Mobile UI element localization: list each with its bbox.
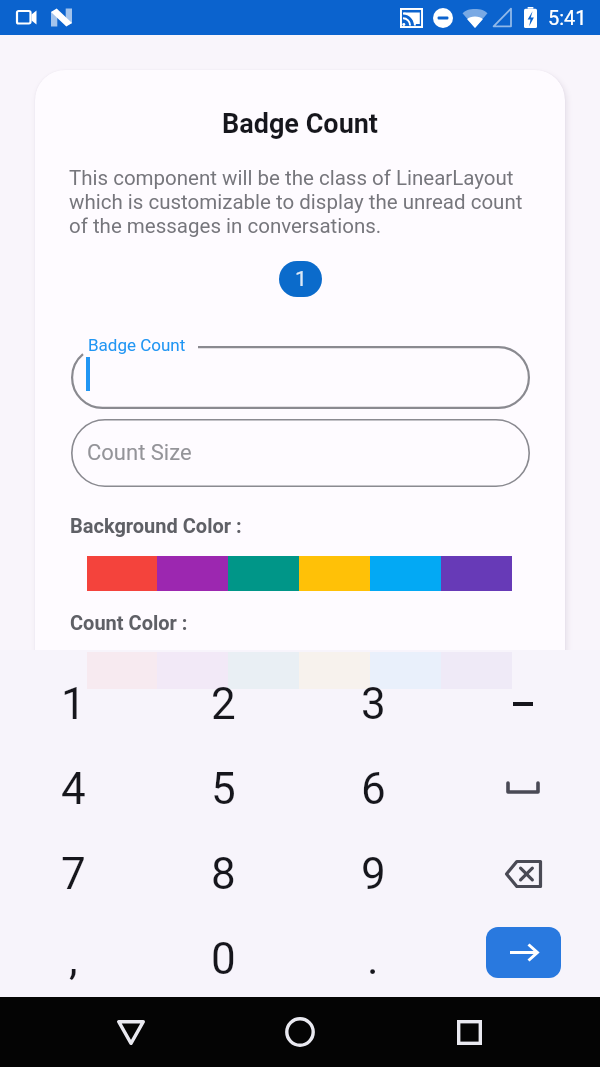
button[interactable]: 1: [279, 261, 322, 297]
button[interactable]: Enter: [448, 916, 598, 1001]
staticText: 5: [211, 763, 236, 815]
button[interactable]: 6: [298, 746, 448, 831]
button[interactable]: .: [298, 916, 448, 1001]
staticText: Count Color :: [70, 611, 188, 634]
button[interactable]: Backspace: [448, 831, 598, 916]
button[interactable]: 8: [148, 831, 298, 916]
staticText: 8: [211, 848, 236, 900]
button[interactable]: 0: [148, 916, 298, 1001]
button[interactable]: Space: [448, 746, 598, 831]
staticText: 6: [361, 763, 386, 815]
staticText: ,: [69, 933, 78, 985]
other: Backspace: [505, 860, 542, 888]
staticText: .: [367, 933, 379, 985]
other: Space: [506, 783, 540, 794]
button[interactable]: 5: [148, 746, 298, 831]
button[interactable]: Minus: [448, 661, 598, 746]
button[interactable]: 3: [298, 661, 448, 746]
button[interactable]: Home: [265, 997, 335, 1067]
button[interactable]: Recents: [434, 997, 504, 1067]
staticText: 1: [295, 267, 307, 292]
button[interactable]: 2: [148, 661, 298, 746]
staticText: 0: [211, 933, 236, 985]
other: Enter: [486, 927, 561, 978]
button[interactable]: ,: [0, 916, 148, 1001]
button[interactable]: Count Size: [71, 419, 530, 487]
button[interactable]: 1: [0, 661, 148, 746]
staticText: 3: [361, 678, 386, 730]
staticText: 1: [61, 678, 86, 730]
staticText: This component will be the class of Line…: [69, 166, 539, 238]
staticText: 9: [361, 848, 386, 900]
button[interactable]: 7: [0, 831, 148, 916]
staticText: 4: [61, 763, 86, 815]
staticText: Badge Count: [88, 335, 186, 355]
button[interactable]: 4: [0, 746, 148, 831]
staticText: Badge Count: [35, 108, 565, 140]
staticText: 2: [211, 678, 236, 730]
staticText: Count Size: [87, 440, 192, 466]
staticText: Background Color :: [70, 514, 242, 537]
staticText: 5:41: [548, 6, 587, 29]
staticText: 7: [61, 848, 86, 900]
button[interactable]: Back: [96, 997, 166, 1067]
button[interactable]: 9: [298, 831, 448, 916]
button[interactable]: Badge Count: [71, 346, 530, 409]
